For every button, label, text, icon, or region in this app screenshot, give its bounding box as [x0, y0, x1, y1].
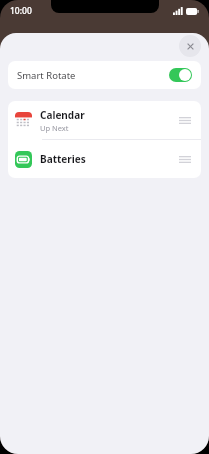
button[interactable]: Close — [179, 35, 201, 57]
button[interactable]: Reorder — [176, 110, 194, 130]
staticText: Smart Rotate — [17, 69, 76, 82]
button[interactable]: Reorder — [176, 149, 194, 169]
staticText: 10:00 — [10, 5, 32, 17]
staticText: Up Next — [40, 123, 69, 133]
button[interactable]: Smart Rotate toggle — [169, 68, 192, 82]
button[interactable]: Calendar — [8, 101, 201, 139]
staticText: Batteries — [40, 152, 86, 166]
button[interactable]: Smart Rotate — [8, 61, 201, 89]
button[interactable]: Batteries — [8, 140, 201, 178]
staticText: Calendar — [40, 108, 85, 122]
